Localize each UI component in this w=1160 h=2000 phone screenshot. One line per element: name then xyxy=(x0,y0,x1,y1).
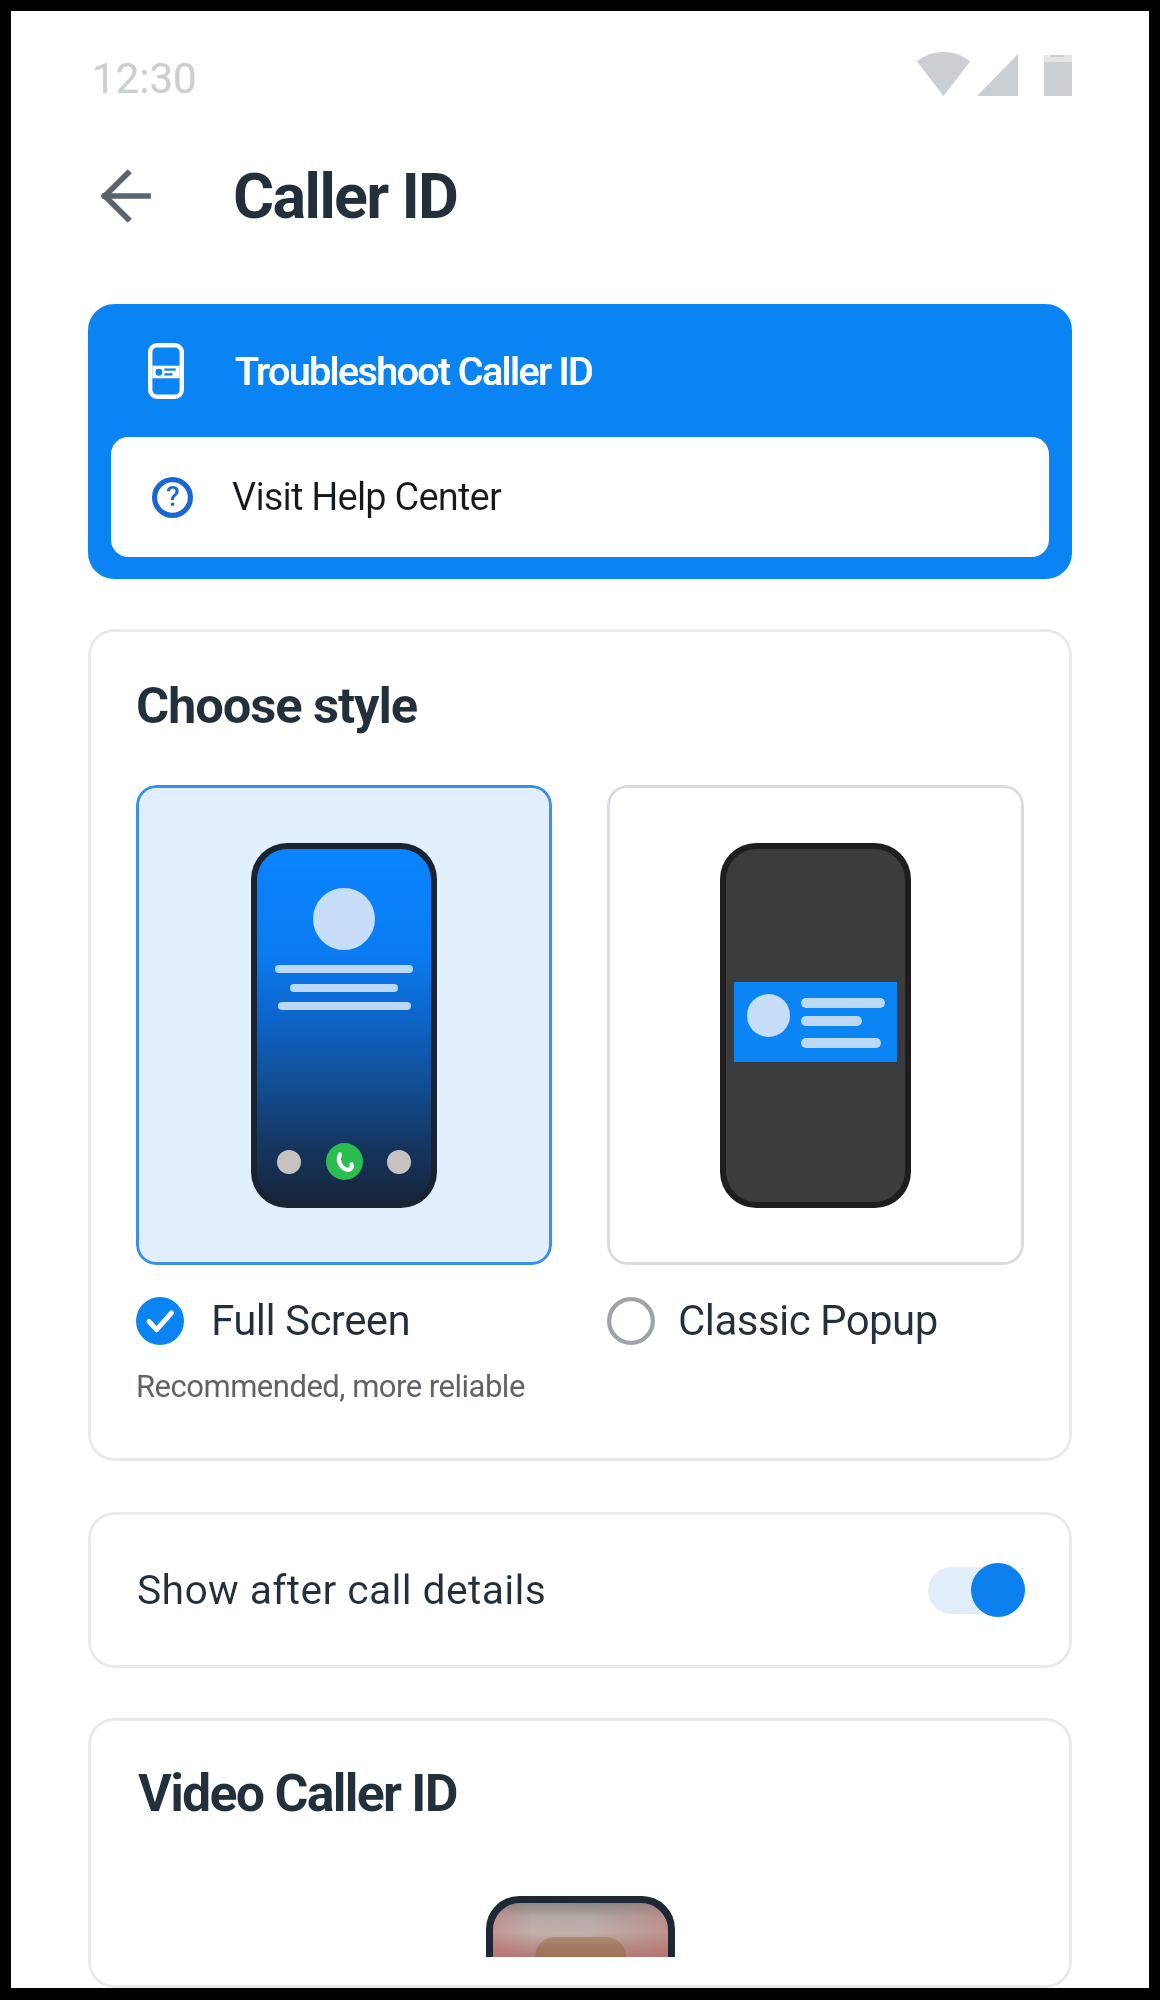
button[interactable]: Full Screen xyxy=(136,1296,411,1345)
staticText: Classic Popup xyxy=(678,1296,938,1345)
staticText: Choose style xyxy=(136,676,417,735)
staticText: Caller ID xyxy=(233,160,458,234)
button[interactable] xyxy=(136,785,552,1265)
staticText: 12:30 xyxy=(92,54,197,103)
staticText: Show after call details xyxy=(137,1566,547,1614)
staticText: Full Screen xyxy=(211,1296,411,1345)
staticText: Visit Help Center xyxy=(232,475,501,520)
button[interactable]: ? xyxy=(111,437,1049,557)
staticText: Video Caller ID xyxy=(138,1763,457,1824)
staticText: ? xyxy=(166,480,180,513)
button[interactable] xyxy=(607,785,1024,1265)
button[interactable]: Show after call details xyxy=(88,1512,1072,1668)
button[interactable]: Troubleshoot Caller ID xyxy=(88,304,1072,437)
button[interactable]: Back xyxy=(67,138,183,254)
button[interactable]: Classic Popup xyxy=(607,1296,938,1345)
staticText: Recommended, more reliable xyxy=(136,1368,525,1404)
staticText: Troubleshoot Caller ID xyxy=(235,348,593,394)
